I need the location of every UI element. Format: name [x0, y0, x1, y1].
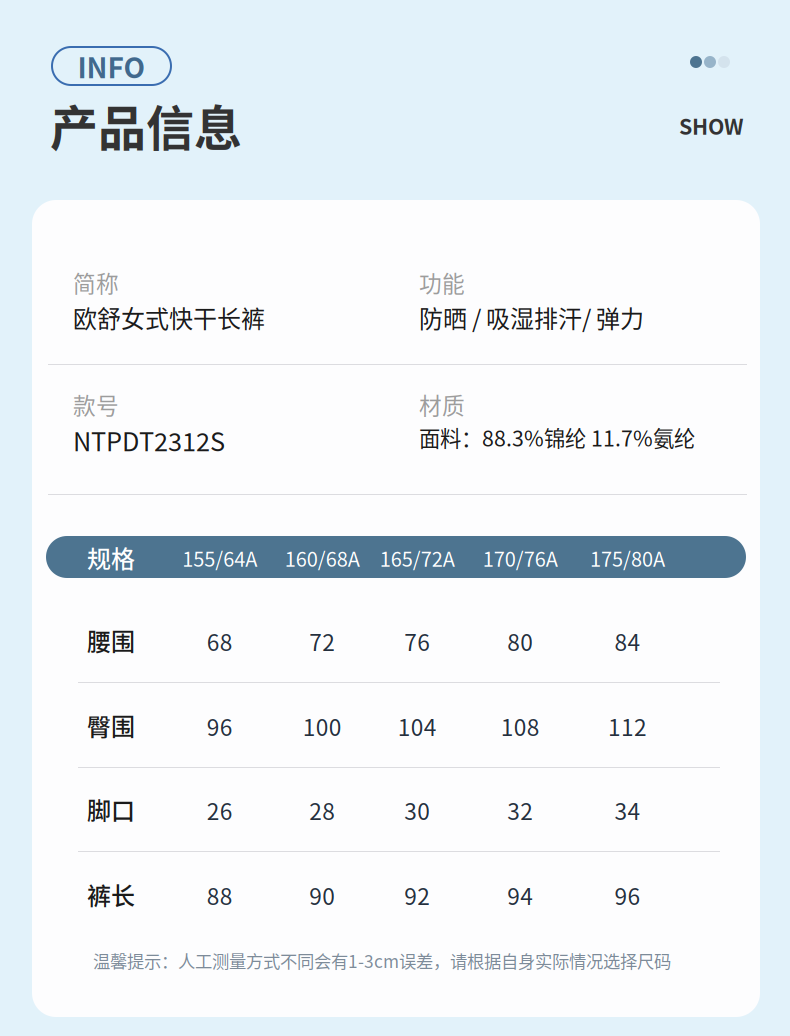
button[interactable]: SHOW — [679, 110, 744, 141]
staticText: 175/80A — [590, 543, 665, 572]
staticText: 30 — [404, 794, 430, 826]
staticText: 简称 — [73, 266, 119, 299]
staticText: 产品信息 — [50, 90, 242, 159]
staticText: 款号 — [73, 388, 119, 421]
staticText: 欧舒女式快干长裤 — [73, 300, 265, 335]
staticText: 腰围 — [87, 623, 135, 658]
staticText: 76 — [404, 625, 430, 657]
staticText: 165/72A — [380, 543, 455, 572]
staticText: 28 — [309, 794, 335, 826]
staticText: 材质 — [419, 388, 465, 421]
staticText: 96 — [614, 879, 640, 911]
staticText: 112 — [608, 710, 647, 742]
staticText: 155/64A — [182, 543, 257, 572]
staticText: 26 — [207, 794, 233, 826]
staticText: 脚口 — [87, 792, 135, 827]
staticText: 104 — [398, 710, 437, 742]
staticText: 80 — [507, 625, 533, 657]
staticText: 防晒 / 吸湿排汗/ 弹力 — [419, 300, 644, 335]
staticText: SHOW — [679, 110, 744, 141]
staticText: 96 — [207, 710, 233, 742]
staticText: 108 — [501, 710, 540, 742]
staticText: 68 — [207, 625, 233, 657]
staticText: 功能 — [419, 266, 465, 299]
staticText: 72 — [309, 625, 335, 657]
staticText: 臀围 — [87, 708, 135, 743]
staticText: 94 — [507, 879, 533, 911]
staticText: 面料：88.3%锦纶 11.7%氨纶 — [419, 422, 695, 453]
staticText: 32 — [507, 794, 533, 826]
staticText: 温馨提示：人工测量方式不同会有1-3cm误差，请根据自身实际情况选择尺码 — [93, 948, 671, 973]
staticText: 90 — [309, 879, 335, 911]
staticText: 84 — [614, 625, 640, 657]
staticText: 裤长 — [87, 877, 135, 912]
staticText: 88 — [207, 879, 233, 911]
staticText: NTPDT2312S — [73, 422, 225, 458]
staticText: 规格 — [87, 540, 135, 575]
staticText: 100 — [303, 710, 342, 742]
staticText: 160/68A — [285, 543, 360, 572]
staticText: INFO — [77, 46, 145, 86]
staticText: 170/76A — [483, 543, 558, 572]
staticText: 34 — [614, 794, 640, 826]
button[interactable]: INFO — [52, 47, 171, 85]
staticText: 92 — [404, 879, 430, 911]
